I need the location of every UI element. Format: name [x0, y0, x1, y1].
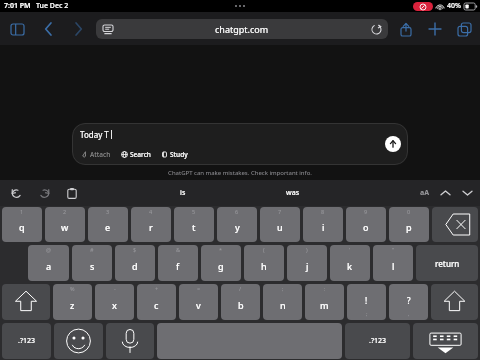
staticText: = — [197, 285, 201, 292]
button[interactable]: & — [158, 245, 198, 281]
button[interactable]: Show tabs — [454, 19, 474, 39]
button[interactable]: 3 — [88, 207, 128, 242]
button[interactable]: 4 — [131, 207, 171, 242]
staticText: p — [406, 221, 412, 233]
staticText: , — [408, 310, 410, 318]
button[interactable]: is — [170, 185, 196, 201]
staticText: ; — [282, 285, 284, 292]
staticText: " — [392, 246, 395, 253]
staticText: v — [196, 299, 201, 311]
staticText: j — [306, 260, 309, 272]
staticText: .?123 — [18, 336, 36, 346]
button[interactable]: : — [305, 284, 344, 320]
staticText: u — [277, 221, 283, 233]
staticText: # — [90, 246, 94, 253]
button[interactable]: 2 — [45, 207, 85, 242]
staticText: 9 — [364, 208, 368, 215]
staticText: a — [46, 260, 52, 272]
button[interactable]: 8 — [303, 207, 343, 242]
staticText: 6 — [235, 208, 239, 215]
button[interactable]: # — [72, 245, 112, 281]
staticText: return — [435, 258, 460, 269]
button[interactable]: ' — [330, 245, 370, 281]
staticText: o — [363, 221, 369, 233]
staticText: 2 — [63, 208, 67, 215]
button[interactable]: + — [137, 284, 176, 320]
staticText: b — [238, 299, 244, 311]
button[interactable]: 7 — [260, 207, 300, 242]
button[interactable]: Formatting — [420, 188, 430, 198]
staticText: e — [105, 221, 111, 233]
button[interactable]: " — [373, 245, 413, 281]
button[interactable]: Backspace — [432, 207, 478, 242]
staticText: ! — [365, 295, 368, 306]
button[interactable]: Search — [119, 149, 153, 160]
button[interactable]: .?123 — [2, 323, 51, 359]
staticText: Search — [130, 150, 151, 159]
button[interactable]: / — [221, 284, 260, 320]
button[interactable]: 5 — [174, 207, 214, 242]
button[interactable]: $ — [115, 245, 155, 281]
staticText: z — [70, 299, 75, 311]
button[interactable]: Send — [385, 136, 401, 152]
staticText: f — [176, 260, 180, 272]
button[interactable]: Dictate — [106, 323, 154, 359]
staticText: ; — [366, 310, 368, 318]
button[interactable]: Undo — [8, 185, 24, 201]
staticText: s — [90, 260, 95, 272]
staticText: : — [324, 285, 326, 292]
staticText: @ — [46, 246, 51, 253]
button[interactable]: Forward — [68, 19, 88, 39]
button[interactable]: Share — [396, 19, 416, 39]
staticText: w — [61, 221, 69, 233]
button[interactable]: Emoji — [54, 323, 103, 359]
button[interactable]: ? — [389, 284, 428, 320]
staticText: $ — [133, 246, 137, 253]
staticText: n — [280, 299, 286, 311]
button[interactable]: 6 — [217, 207, 257, 242]
button[interactable]: Next — [460, 186, 474, 200]
staticText: ' — [349, 246, 351, 253]
button[interactable]: Paste — [64, 185, 80, 201]
button[interactable]: % — [53, 284, 92, 320]
button[interactable]: Shift — [2, 284, 50, 320]
button[interactable]: .?123 — [345, 323, 410, 359]
staticText: t — [192, 221, 196, 233]
button[interactable]: ; — [263, 284, 302, 320]
button[interactable]: * — [201, 245, 241, 281]
button[interactable]: ! — [347, 284, 386, 320]
button[interactable]: 9 — [346, 207, 386, 242]
button[interactable]: Hide keyboard — [413, 323, 478, 359]
button[interactable]: Reload — [370, 23, 382, 35]
button[interactable]: Back — [38, 19, 58, 39]
button[interactable]: Attach — [79, 149, 113, 160]
button[interactable]: Page settings — [96, 19, 388, 39]
button[interactable]: @ — [28, 245, 69, 281]
other: Page settings — [101, 22, 115, 36]
staticText: 4 — [149, 208, 153, 215]
staticText: 8 — [321, 208, 325, 215]
button[interactable]: ( — [244, 245, 284, 281]
button[interactable]: return — [416, 245, 478, 281]
button[interactable]: Redo — [36, 185, 52, 201]
staticText: l — [392, 260, 395, 272]
button[interactable]: 1 — [2, 207, 42, 242]
button[interactable]: - — [95, 284, 134, 320]
button[interactable]: Shift — [431, 284, 478, 320]
staticText: % — [70, 285, 75, 292]
staticText: .?123 — [369, 336, 387, 346]
button[interactable]: ) — [287, 245, 327, 281]
staticText: 1 — [20, 208, 24, 215]
button[interactable]: New tab — [425, 19, 445, 39]
staticText: * — [219, 246, 223, 253]
staticText: ? — [407, 295, 411, 306]
staticText: c — [154, 299, 159, 311]
button[interactable]: = — [179, 284, 218, 320]
button[interactable]: was — [276, 185, 310, 201]
staticText: 0 — [407, 208, 411, 215]
button[interactable]: Previous — [438, 186, 452, 200]
button[interactable]: 0 — [389, 207, 429, 242]
button[interactable]: Show sidebar — [6, 18, 28, 40]
button[interactable]: Study — [159, 149, 190, 160]
